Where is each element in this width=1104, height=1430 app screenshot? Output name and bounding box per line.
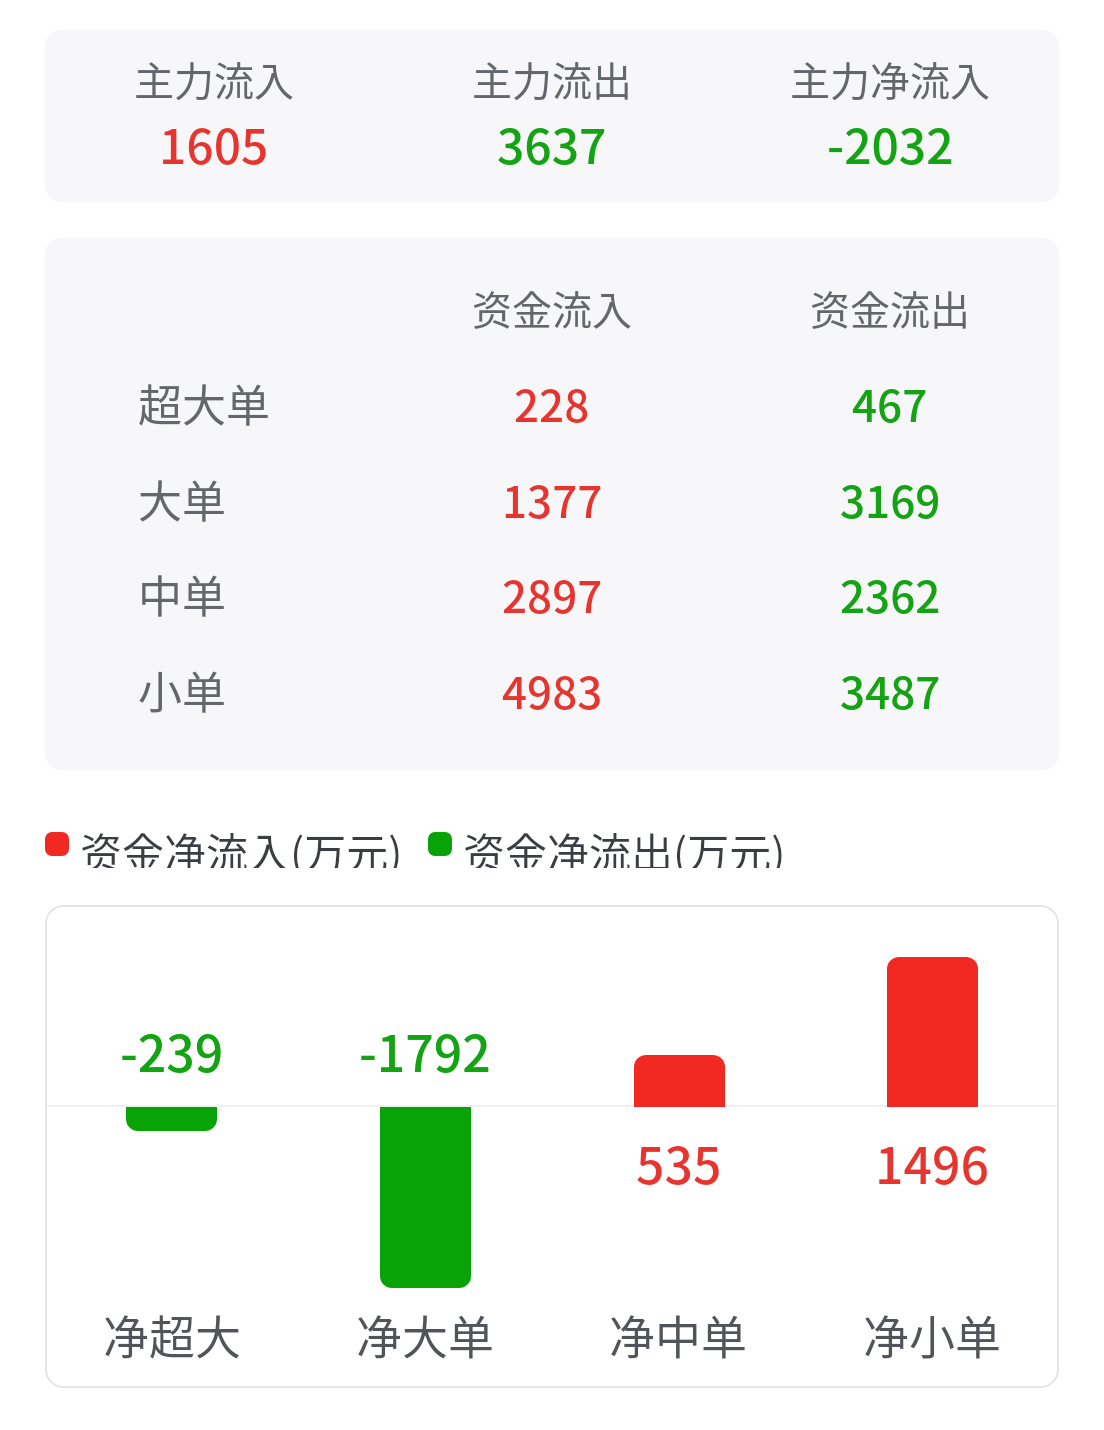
staticText: -239 (120, 1014, 224, 1086)
staticText: 主力净流入 (790, 50, 990, 108)
staticText: 535 (636, 1126, 722, 1198)
staticText: 主力流入 (134, 50, 294, 108)
staticText: 净大单 (356, 1301, 494, 1368)
staticText: 1496 (875, 1126, 989, 1198)
button[interactable]: 资金净流出(万元) (428, 820, 808, 868)
staticText: 3169 (840, 467, 941, 531)
staticText: 1377 (502, 467, 603, 531)
staticText: 资金流入 (472, 279, 632, 337)
staticText: 3637 (497, 108, 607, 178)
staticText: 4983 (502, 658, 603, 722)
staticText: 1605 (159, 108, 269, 178)
staticText: 资金净流出(万元) (463, 820, 786, 868)
staticText: 228 (514, 371, 590, 435)
staticText: -1792 (359, 1014, 491, 1086)
staticText: 资金净流入(万元) (80, 820, 403, 868)
staticText: 3487 (840, 658, 941, 722)
staticText: 净超大 (103, 1301, 241, 1368)
staticText: 主力流出 (472, 50, 632, 108)
staticText: -2032 (827, 108, 954, 178)
staticText: 2897 (502, 562, 603, 626)
staticText: 净中单 (609, 1301, 747, 1368)
staticText: 小单 (138, 658, 226, 722)
staticText: 净小单 (863, 1301, 1001, 1368)
staticText: 467 (852, 371, 928, 435)
staticText: 2362 (840, 562, 941, 626)
staticText: 超大单 (138, 371, 270, 435)
staticText: 资金流出 (810, 279, 970, 337)
staticText: 中单 (138, 562, 226, 626)
button[interactable]: 资金净流入(万元) (45, 820, 425, 868)
staticText: 大单 (138, 467, 226, 531)
